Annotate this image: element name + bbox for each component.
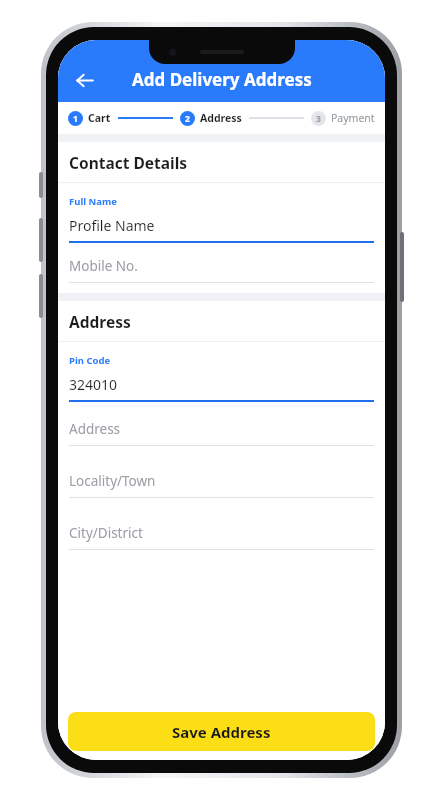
staticText: Mobile No. — [69, 257, 138, 275]
button[interactable]: City/District — [58, 524, 385, 550]
button[interactable]: Full Name — [58, 183, 385, 243]
button[interactable]: 2 — [180, 111, 195, 126]
staticText: Profile Name — [69, 216, 155, 235]
button[interactable]: Pin Code — [58, 342, 385, 402]
staticText: Contact Details — [69, 152, 188, 173]
button[interactable]: 3 — [311, 111, 326, 126]
staticText: 324010 — [69, 375, 118, 394]
staticText: City/District — [69, 524, 143, 542]
staticText: Pin Code — [69, 354, 111, 367]
button[interactable]: Mobile No. — [58, 257, 385, 283]
staticText: Locality/Town — [69, 472, 156, 490]
staticText: 3 — [316, 113, 321, 125]
button[interactable]: Save Address — [68, 712, 375, 751]
staticText: Add Delivery Address — [132, 68, 312, 91]
staticText: Payment — [331, 111, 375, 125]
staticText: Address — [200, 111, 242, 125]
button[interactable]: 1 — [68, 111, 83, 126]
staticText: Full Name — [69, 195, 117, 208]
staticText: Address — [69, 311, 131, 332]
staticText: Save Address — [172, 722, 271, 742]
staticText: Address — [69, 420, 121, 438]
button[interactable]: Locality/Town — [58, 472, 385, 498]
button[interactable]: Address — [58, 420, 385, 446]
staticText: 2 — [185, 113, 190, 125]
staticText: Cart — [88, 111, 111, 125]
button[interactable]: Back — [64, 60, 104, 100]
staticText: 1 — [73, 113, 78, 125]
